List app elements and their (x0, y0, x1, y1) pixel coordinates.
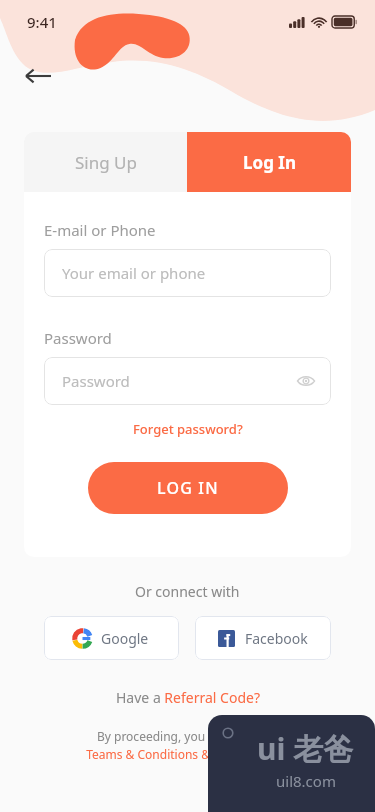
staticText: Have a Referral Code? (116, 688, 260, 707)
staticText: Forget password? (133, 420, 243, 438)
button[interactable]: Have a Referral Code? (112, 686, 264, 709)
button[interactable]: Log In (187, 132, 351, 192)
staticText: E-mail or Phone (44, 220, 156, 240)
staticText: Google (101, 629, 149, 648)
staticText: Facebook (245, 629, 308, 648)
button[interactable]: Your email or phone (44, 249, 331, 297)
staticText: Or connect with (135, 582, 240, 601)
staticText: ui 老爸 (257, 728, 354, 769)
staticText: 9:41 (27, 12, 57, 32)
staticText: Password (62, 371, 130, 391)
staticText: Your email or phone (62, 263, 206, 283)
button[interactable]: Back (18, 56, 58, 96)
button[interactable]: Password (44, 357, 331, 405)
staticText: Password (44, 328, 112, 348)
staticText: LOG IN (157, 477, 219, 499)
button[interactable]: Show password (293, 368, 319, 394)
button[interactable]: Google (44, 616, 179, 660)
staticText: By proceeding, you agree to our Teams & … (86, 728, 289, 763)
staticText: uil8.com (276, 771, 336, 791)
button[interactable]: LOG IN (88, 462, 288, 514)
button[interactable]: Facebook (195, 616, 331, 660)
button[interactable]: Sing Up (24, 132, 187, 192)
staticText: Log In (243, 151, 296, 174)
button[interactable]: Forget password? (129, 418, 247, 440)
staticText: Sing Up (75, 151, 137, 174)
